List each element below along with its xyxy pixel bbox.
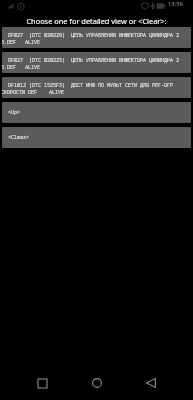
staticText: DF027 (DTC 020225) ЦЕПЬ УПРАВЛЕНИЯ ИНЖЕК… (8, 57, 180, 64)
staticText: 13:59 (168, 0, 183, 8)
button[interactable]: DF1012 (DTC 1525F3) ДОСТ ИНФ ПО МУЛЬТ СЕ… (2, 77, 191, 98)
staticText: <Clear> (8, 134, 30, 141)
button[interactable]: <Up> (2, 102, 191, 123)
staticText: 3.DEF ALIVE (2, 39, 41, 46)
button[interactable]: <Clear> (2, 127, 191, 148)
button[interactable]: DF027 (DTC 020229) ЦЕПЬ УПРАВЛЕНИЯ ИНЖЕК… (2, 27, 191, 48)
staticText: 5.DEF ALIVE (2, 64, 41, 71)
button[interactable]: Home (85, 371, 109, 395)
button[interactable]: Back (139, 371, 163, 395)
button[interactable]: Recent apps (30, 371, 54, 395)
staticText: <Up> (8, 109, 21, 116)
staticText: DF027 (DTC 020229) ЦЕПЬ УПРАВЛЕНИЯ ИНЖЕК… (8, 32, 180, 39)
staticText: DF1012 (DTC 1525F3) ДОСТ ИНФ ПО МУЛЬТ СЕ… (8, 82, 174, 89)
button[interactable]: DF027 (DTC 020225) ЦЕПЬ УПРАВЛЕНИЯ ИНЖЕК… (2, 52, 191, 73)
staticText: СКОРОСТИ DEF ALIVE (2, 89, 65, 96)
staticText: Choose one for detailed view or <Clear>: (26, 16, 167, 26)
